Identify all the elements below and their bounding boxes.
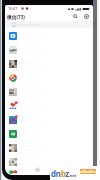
button[interactable] [5, 169, 93, 175]
button[interactable]: Add [81, 12, 92, 21]
button[interactable] [5, 85, 93, 99]
button[interactable] [5, 155, 93, 169]
button[interactable]: Search [70, 12, 81, 21]
button[interactable] [5, 57, 93, 71]
staticText: 微信(73) [7, 14, 25, 20]
button[interactable] [5, 127, 93, 141]
staticText: 电脑百事网 [80, 170, 96, 174]
button[interactable] [5, 141, 93, 155]
staticText: 10:41 [8, 6, 18, 11]
button[interactable] [5, 113, 93, 127]
button[interactable] [5, 71, 93, 85]
button[interactable] [5, 21, 93, 28]
button[interactable] [5, 43, 93, 57]
button[interactable] [5, 29, 93, 43]
button[interactable] [5, 99, 93, 113]
staticText: dnbz.net [51, 168, 76, 179]
